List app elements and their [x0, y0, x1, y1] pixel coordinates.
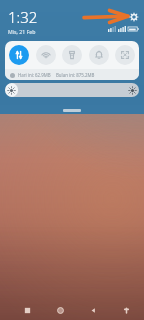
button[interactable]: Screenshot: [115, 45, 135, 65]
button[interactable]: Wi-Fi: [36, 45, 56, 65]
staticText: Mis, 21 Feb: [8, 28, 36, 35]
button[interactable]: Recents: [19, 302, 35, 318]
staticText: Bulan ini: 875.2MB: [56, 72, 95, 78]
button[interactable]: Assistant: [118, 302, 134, 318]
button[interactable]: Home: [52, 302, 68, 318]
button[interactable]: Hari ini: 62.9MB: [5, 69, 139, 80]
button[interactable]: Sound: [89, 45, 109, 65]
staticText: Hari ini: 62.9MB: [18, 72, 51, 78]
button[interactable]: Settings: [128, 11, 139, 22]
button[interactable]: [5, 83, 139, 97]
button[interactable]: Flashlight: [62, 45, 82, 65]
button[interactable]: Back: [85, 302, 101, 318]
staticText: 1:32: [8, 7, 38, 27]
button[interactable]: Mobile data: [9, 45, 29, 65]
